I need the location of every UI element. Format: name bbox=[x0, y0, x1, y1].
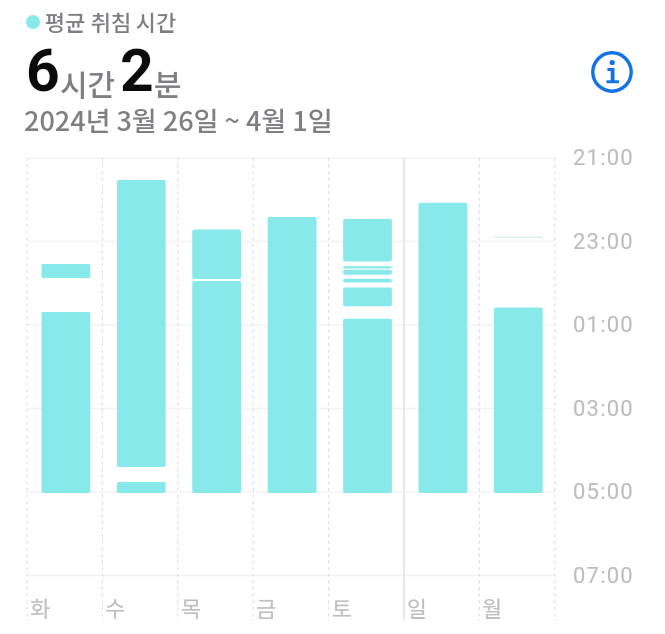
staticText: 21:00 bbox=[573, 145, 634, 171]
staticText: 일 bbox=[407, 591, 428, 623]
staticText: 2 bbox=[120, 36, 154, 105]
staticText: 6 bbox=[26, 36, 60, 105]
staticText: 03:00 bbox=[573, 396, 634, 422]
staticText: 01:00 bbox=[573, 312, 634, 338]
staticText: 23:00 bbox=[573, 229, 634, 255]
staticText: 화 bbox=[30, 591, 51, 623]
staticText: 분 bbox=[154, 61, 182, 104]
staticText: 토 bbox=[332, 591, 353, 623]
staticText: 05:00 bbox=[573, 479, 634, 505]
staticText: 2024년 3월 26일 ~ 4월 1일 bbox=[24, 100, 333, 139]
staticText: 시간 bbox=[60, 61, 116, 104]
button[interactable]: 정보 bbox=[588, 48, 636, 96]
staticText: 평균 취침 시간 bbox=[45, 5, 177, 37]
staticText: 수 bbox=[105, 591, 126, 623]
staticText: 금 bbox=[256, 591, 277, 623]
staticText: 목 bbox=[181, 591, 202, 623]
staticText: 07:00 bbox=[573, 563, 634, 589]
staticText: 월 bbox=[482, 591, 503, 623]
